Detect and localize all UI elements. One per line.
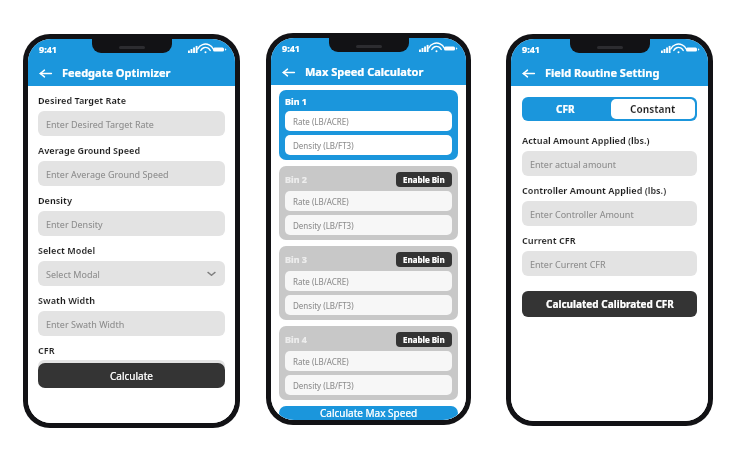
staticText: Enable Bin [403, 174, 445, 185]
staticText: Feedgate Optimizer [62, 65, 171, 80]
button[interactable]: Density (LB/FT3) [285, 135, 452, 155]
staticText: Bin 3 [285, 253, 308, 265]
button[interactable]: Constant [611, 99, 695, 119]
staticText: Calculate Max Speed [320, 406, 418, 420]
staticText: Controller Amount Applied (lbs.) [522, 184, 667, 196]
button[interactable]: Calculate Max Speed [279, 406, 458, 420]
staticText: Enable Bin [403, 334, 445, 345]
staticText: Bin 2 [285, 173, 308, 185]
staticText: Rate (LB/ACRE) [293, 196, 349, 207]
button[interactable]: CFR [522, 97, 609, 121]
staticText: Enter Average Ground Speed [46, 168, 169, 180]
button[interactable]: Back [518, 63, 538, 83]
button[interactable]: Select Modal [38, 261, 225, 286]
staticText: Actual Amount Applied (lbs.) [522, 134, 650, 146]
staticText: CFR [556, 102, 575, 116]
button[interactable]: Enter Controller Amount [522, 201, 697, 226]
staticText: Select Model [38, 244, 96, 256]
button[interactable]: Enter Desired Target Rate [38, 111, 225, 136]
staticText: Enter Controller Amount [530, 208, 634, 220]
button[interactable]: Density (LB/FT3) [285, 375, 452, 395]
staticText: Density (LB/FT3) [293, 300, 354, 311]
staticText: Rate (LB/ACRE) [293, 116, 349, 127]
button[interactable]: Rate (LB/ACRE) [285, 191, 452, 211]
staticText: Bin 4 [285, 333, 308, 345]
staticText: Calculated Calibrated CFR [546, 297, 674, 311]
staticText: Enable Bin [403, 254, 445, 265]
button[interactable]: Enter Swath Width [38, 311, 225, 336]
button[interactable]: Enter actual amount [522, 151, 697, 176]
staticText: Swath Width [38, 294, 95, 306]
button[interactable]: Calculate [38, 363, 225, 388]
staticText: Constant [630, 102, 676, 116]
staticText: Density [38, 194, 73, 206]
button[interactable]: Enable Bin [396, 172, 452, 187]
staticText: Enter Density [46, 218, 103, 230]
staticText: Current CFR [522, 234, 576, 246]
staticText: Rate (LB/ACRE) [293, 276, 349, 287]
button[interactable]: Enter Density [38, 211, 225, 236]
staticText: Bin 1 [285, 95, 308, 107]
staticText: Desired Target Rate [38, 94, 127, 106]
staticText: CFR [38, 344, 55, 356]
staticText: Enter Desired Target Rate [46, 118, 154, 130]
button[interactable]: Enable Bin [396, 252, 452, 267]
button[interactable]: Enable Bin [396, 332, 452, 347]
staticText: Enter actual amount [530, 158, 617, 170]
staticText: Density (LB/FT3) [293, 380, 354, 391]
staticText: 9:41 [39, 43, 57, 55]
button[interactable]: Enter Current CFR [522, 251, 697, 276]
button[interactable]: Density (LB/FT3) [285, 295, 452, 315]
button[interactable]: Rate (LB/ACRE) [285, 351, 452, 371]
staticText: Max Speed Calculator [305, 64, 424, 79]
staticText: Rate (LB/ACRE) [293, 356, 349, 367]
staticText: Density (LB/FT3) [293, 140, 354, 151]
button[interactable]: Back [278, 62, 298, 82]
button[interactable]: Calculated Calibrated CFR [522, 291, 697, 317]
staticText: 9:41 [522, 43, 540, 55]
staticText: 9:41 [282, 42, 300, 54]
staticText: Average Ground Speed [38, 144, 141, 156]
staticText: Density (LB/FT3) [293, 220, 354, 231]
button[interactable]: Rate (LB/ACRE) [285, 111, 452, 131]
button[interactable]: Back [35, 63, 55, 83]
staticText: Calculate [110, 369, 153, 383]
staticText: Field Routine Setting [545, 65, 660, 80]
staticText: Enter Swath Width [46, 318, 125, 330]
button[interactable] [38, 360, 225, 385]
button[interactable]: Rate (LB/ACRE) [285, 271, 452, 291]
button[interactable]: Enter Average Ground Speed [38, 161, 225, 186]
staticText: Select Modal [46, 268, 100, 280]
staticText: Enter Current CFR [530, 258, 606, 270]
button[interactable]: Density (LB/FT3) [285, 215, 452, 235]
